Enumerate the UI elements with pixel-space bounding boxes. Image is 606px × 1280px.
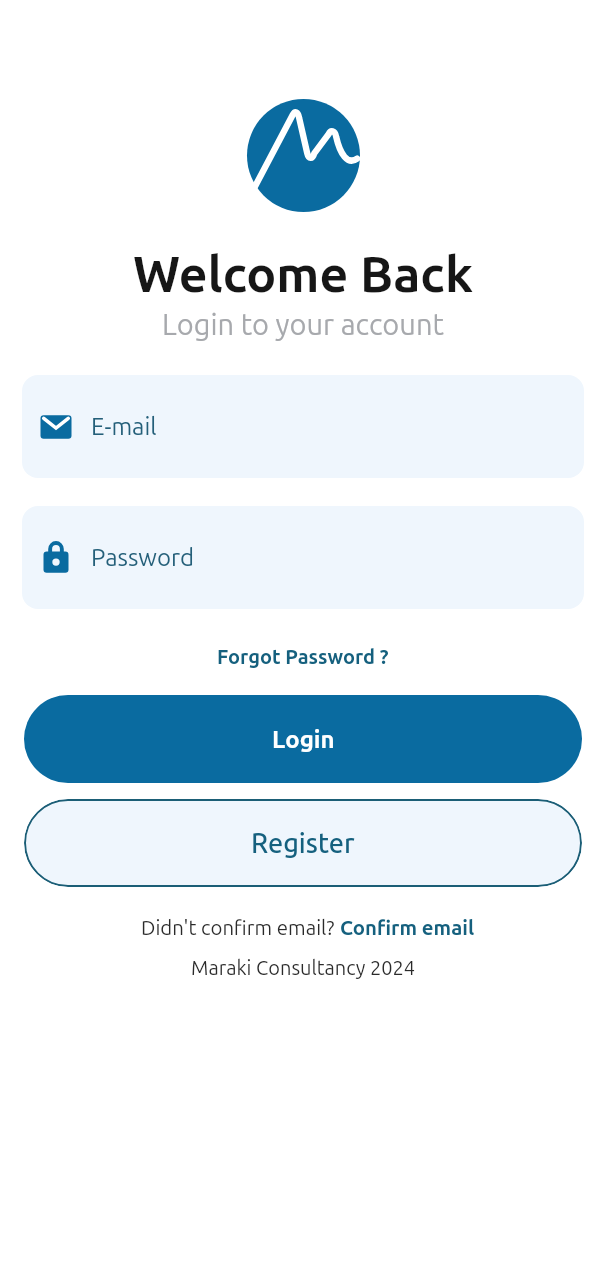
staticText: Maraki Consultancy 2024: [191, 956, 416, 978]
staticText: Login: [272, 726, 335, 753]
staticText: Didn't confirm email?: [141, 916, 340, 939]
button[interactable]: Login: [24, 695, 582, 783]
button[interactable]: Register: [24, 799, 582, 887]
staticText: E-mail: [91, 413, 157, 440]
button[interactable]: E-mail: [22, 375, 584, 478]
button[interactable]: Forgot Password ?: [209, 642, 397, 670]
staticText: Confirm email: [340, 916, 475, 939]
button[interactable]: Password: [22, 506, 584, 609]
staticText: Welcome Back: [133, 245, 473, 301]
other: Maraki logo: [247, 99, 360, 212]
staticText: Register: [251, 828, 355, 858]
button[interactable]: Confirm email: [340, 916, 475, 939]
staticText: Forgot Password ?: [217, 645, 389, 667]
staticText: Login to your account: [162, 308, 444, 341]
staticText: Password: [91, 544, 195, 571]
